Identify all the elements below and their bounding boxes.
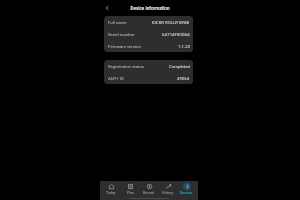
button[interactable]: Registration status (104, 60, 193, 72)
button[interactable]: ANT+ ID (104, 72, 193, 84)
staticText: Plan (127, 191, 134, 195)
staticText: Record (143, 191, 155, 195)
button[interactable]: Serial number (104, 28, 193, 40)
button[interactable]: Full name (104, 16, 193, 28)
button[interactable]: Back (102, 3, 112, 13)
button[interactable]: Today (102, 181, 120, 200)
staticText: Device information (130, 6, 170, 11)
button[interactable]: Plan (120, 181, 139, 200)
staticText: Devices (180, 191, 193, 195)
button[interactable]: Devices (177, 181, 196, 200)
staticText: Serial number (108, 32, 135, 37)
staticText: Completed (169, 64, 190, 69)
staticText: 6A714F00DA4 (162, 32, 190, 37)
staticText: 1.1.23 (178, 44, 190, 49)
staticText: Registration status (108, 64, 145, 69)
button[interactable]: History (158, 181, 177, 200)
staticText: ANT+ ID (108, 76, 124, 81)
staticText: Full name (108, 20, 127, 25)
button[interactable]: Firmware version (104, 40, 193, 52)
staticText: Today (106, 191, 116, 195)
staticText: History (162, 191, 174, 195)
staticText: Firmware version (108, 44, 141, 49)
staticText: 49064 (177, 76, 190, 81)
button[interactable]: Record (139, 181, 158, 200)
staticText: KICKR ROLLR BFAB (152, 20, 190, 25)
